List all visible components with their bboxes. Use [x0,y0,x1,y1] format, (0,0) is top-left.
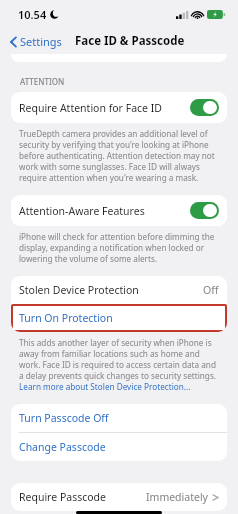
button[interactable]: Toggle on [190,99,219,116]
button[interactable]: Turn Passcode Off [11,404,227,432]
staticText: Settings [20,34,62,49]
button[interactable]: Turn On Protection [11,304,227,332]
staticText: Require Attention for Face ID [19,101,162,115]
button[interactable]: Change Passcode [11,433,227,461]
staticText: Stolen Device Protection [19,283,139,297]
staticText: Off [203,283,219,297]
staticText: Require Passcode [19,490,106,504]
button[interactable]: Attention-Aware Features [11,195,227,226]
button[interactable]: Require Passcode [11,483,227,511]
staticText: Attention-Aware Features [19,204,145,218]
staticText: iPhone will check for attention before d… [19,231,222,264]
staticText: Turn Passcode Off [19,411,109,425]
staticText: Turn On Protection [19,311,113,325]
button[interactable]: Settings [9,31,63,52]
button[interactable]: Require Attention for Face ID [11,92,227,123]
staticText: This adds another layer of security when… [19,337,222,392]
button[interactable]: Stolen Device Protection [11,276,227,304]
staticText: Change Passcode [19,440,106,454]
staticText: TrueDepth camera provides an additional … [19,128,222,183]
button[interactable]: Toggle on [190,202,219,219]
staticText: Face ID & Passcode [75,33,185,49]
staticText: Immediately [146,490,208,504]
staticText: 10.54 [18,7,47,22]
staticText: ATTENTION [20,76,65,87]
